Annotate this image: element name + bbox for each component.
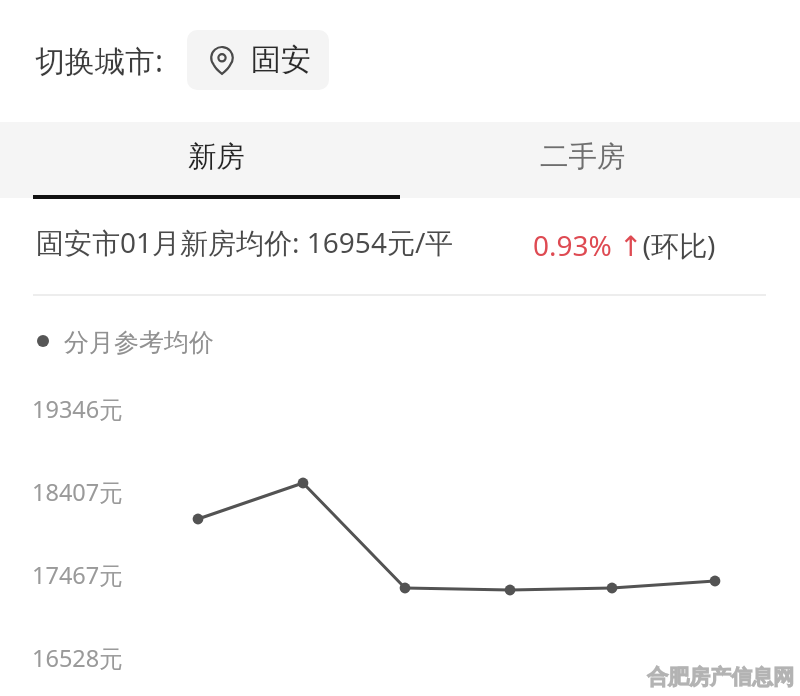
- staticText: 0.93% ↑(环比): [533, 226, 716, 264]
- staticText: 切换城市:: [35, 40, 164, 81]
- staticText: 18407元: [32, 476, 123, 508]
- button[interactable]: 新房: [33, 122, 399, 198]
- staticText: 分月参考均价: [64, 327, 214, 358]
- staticText: 二手房: [540, 139, 626, 175]
- staticText: 19346元: [32, 393, 123, 425]
- staticText: 固安市01月新房均价: 16954元/平: [36, 223, 454, 261]
- staticText: 16528元: [32, 642, 123, 674]
- staticText: 17467元: [32, 559, 123, 591]
- staticText: 合肥房产信息网: [647, 664, 794, 690]
- button[interactable]: 二手房: [399, 122, 766, 198]
- staticText: 固安: [251, 41, 311, 79]
- button[interactable]: Choose city: [187, 30, 329, 90]
- staticText: 新房: [188, 139, 245, 175]
- other: Choose city: [209, 47, 235, 73]
